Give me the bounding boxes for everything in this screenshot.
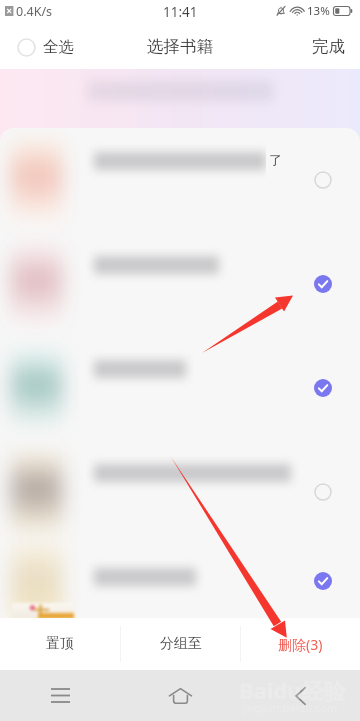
button[interactable]: 分组至	[121, 618, 240, 670]
button[interactable]: 全选	[0, 28, 88, 66]
staticText: Baidu经验	[239, 675, 346, 705]
button[interactable]: Home	[120, 670, 240, 721]
button[interactable]	[0, 336, 360, 440]
staticText: 删除(3)	[278, 635, 323, 654]
staticText: jingyan.baidu.com	[242, 700, 338, 715]
staticText: 全选	[43, 37, 74, 57]
button[interactable]: 完成	[295, 24, 360, 69]
staticText: 0.4K/s	[16, 3, 53, 20]
button[interactable]: Menu	[0, 670, 120, 721]
staticText: 13%	[307, 3, 330, 19]
button[interactable]	[0, 544, 360, 618]
staticText: 了	[269, 152, 282, 168]
button[interactable]	[0, 232, 360, 336]
staticText: 选择书籍	[147, 36, 213, 57]
button[interactable]	[0, 128, 360, 232]
staticText: 置顶	[46, 635, 74, 653]
button[interactable]: 置顶	[0, 618, 120, 670]
button[interactable]: Back	[240, 670, 360, 721]
staticText: 完成	[312, 36, 345, 57]
button[interactable]	[0, 440, 360, 544]
staticText: 11:41	[163, 3, 198, 21]
staticText: 分组至	[160, 635, 202, 653]
button[interactable]: 删除(3)	[241, 618, 360, 670]
